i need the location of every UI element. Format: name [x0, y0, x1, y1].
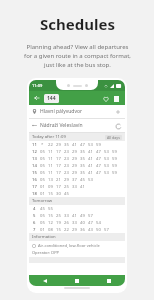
button[interactable]: 29 — [62, 177, 70, 183]
button[interactable]: 49 — [78, 213, 86, 219]
button[interactable]: 05 — [38, 149, 46, 155]
button[interactable]: 17 — [54, 156, 62, 162]
button[interactable]: 23 — [62, 156, 70, 162]
button[interactable]: 17 — [54, 184, 62, 190]
button[interactable]: Recents — [93, 275, 125, 286]
button[interactable]: 17 — [54, 149, 62, 155]
button[interactable]: 29 — [70, 163, 78, 169]
button[interactable]: Favorite — [100, 93, 111, 104]
button[interactable]: 25 — [62, 184, 70, 190]
button[interactable]: 47 — [78, 142, 86, 148]
button[interactable]: 12 — [46, 220, 54, 226]
button[interactable]: 47 — [86, 220, 94, 226]
button[interactable]: 05 — [38, 177, 46, 183]
button[interactable]: 35 — [78, 163, 86, 169]
button[interactable]: Home — [61, 275, 93, 286]
button[interactable]: 33 — [62, 213, 70, 219]
button[interactable]: 23 — [62, 170, 70, 176]
button[interactable]: 13 — [46, 177, 54, 183]
button[interactable]: Swap direction — [114, 122, 122, 130]
button[interactable]: 47 — [94, 149, 102, 155]
button[interactable]: 01 — [38, 227, 46, 233]
button[interactable]: 08 — [46, 227, 54, 233]
button[interactable]: 45 — [62, 191, 70, 197]
button[interactable]: 59 — [110, 163, 118, 169]
button[interactable]: 53 — [86, 142, 94, 148]
button[interactable]: 17 — [54, 170, 62, 176]
button[interactable]: 15 — [46, 191, 54, 197]
button[interactable]: 47 — [94, 163, 102, 169]
button[interactable]: 29 — [70, 170, 78, 176]
button[interactable]: 55 — [46, 206, 54, 212]
button[interactable]: 25 — [54, 213, 62, 219]
button[interactable]: 33 — [70, 220, 78, 226]
button[interactable]: 05 — [38, 163, 46, 169]
button[interactable]: 35 — [78, 149, 86, 155]
button[interactable]: Nádraží Veleslavín — [29, 119, 125, 132]
button[interactable]: Change stop — [114, 108, 122, 116]
button[interactable]: 22 — [62, 227, 70, 233]
button[interactable]: 41 — [70, 213, 78, 219]
button[interactable]: 30 — [54, 191, 62, 197]
button[interactable]: 29 — [70, 149, 78, 155]
button[interactable]: 41 — [78, 184, 86, 190]
button[interactable]: More options — [111, 93, 122, 104]
button[interactable]: 40 — [78, 220, 86, 226]
button[interactable]: * — [38, 142, 46, 148]
button[interactable]: 35 — [78, 156, 86, 162]
button[interactable]: Back — [29, 275, 61, 286]
button[interactable]: 41 — [86, 163, 94, 169]
button[interactable]: 21 — [54, 177, 62, 183]
button[interactable]: 57 — [102, 227, 110, 233]
button[interactable]: 53 — [102, 163, 110, 169]
button[interactable]: 26 — [62, 220, 70, 226]
button[interactable]: 45 — [78, 177, 86, 183]
button[interactable]: 47 — [94, 156, 102, 162]
button[interactable]: Hlavní pályvudvor — [29, 105, 125, 118]
button[interactable]: 59 — [110, 149, 118, 155]
button[interactable]: 53 — [102, 170, 110, 176]
button[interactable]: 41 — [86, 170, 94, 176]
button[interactable]: All days — [105, 135, 122, 140]
button[interactable]: 53 — [102, 149, 110, 155]
button[interactable]: 11 — [46, 163, 54, 169]
button[interactable]: 11 — [46, 149, 54, 155]
button[interactable]: 01 — [38, 184, 46, 190]
button[interactable]: 11 — [46, 170, 54, 176]
button[interactable]: 23 — [62, 163, 70, 169]
button[interactable]: 36 — [78, 227, 86, 233]
button[interactable]: 59 — [110, 156, 118, 162]
button[interactable]: 22 — [46, 142, 54, 148]
button[interactable]: 23 — [62, 149, 70, 155]
button[interactable]: 59 — [110, 170, 118, 176]
button[interactable]: 01 — [38, 191, 46, 197]
button[interactable]: 41 — [86, 149, 94, 155]
button[interactable]: 11 — [46, 156, 54, 162]
button[interactable]: 53 — [102, 156, 110, 162]
button[interactable]: 45 — [38, 206, 46, 212]
button[interactable]: 59 — [94, 142, 102, 148]
button[interactable]: 33 — [70, 184, 78, 190]
button[interactable]: 29 — [70, 156, 78, 162]
button[interactable]: 35 — [78, 170, 86, 176]
button[interactable]: 35 — [62, 142, 70, 148]
button[interactable]: 50 — [94, 227, 102, 233]
button[interactable]: 43 — [86, 227, 94, 233]
button[interactable]: 19 — [54, 220, 62, 226]
button[interactable]: 37 — [70, 177, 78, 183]
button[interactable]: 53 — [86, 177, 94, 183]
button[interactable]: 05 — [38, 170, 46, 176]
button[interactable]: 41 — [70, 142, 78, 148]
button[interactable]: 05 — [38, 220, 46, 226]
button[interactable]: 47 — [94, 170, 102, 176]
button[interactable]: 17 — [54, 163, 62, 169]
button[interactable]: 57 — [86, 213, 94, 219]
button[interactable]: 05 — [38, 156, 46, 162]
button[interactable]: 41 — [86, 156, 94, 162]
button[interactable]: 05 — [38, 213, 46, 219]
button[interactable]: 15 — [46, 213, 54, 219]
button[interactable]: Back — [32, 93, 42, 103]
button[interactable]: 144 — [44, 94, 59, 103]
button[interactable]: 29 — [70, 227, 78, 233]
button[interactable]: 09 — [46, 184, 54, 190]
